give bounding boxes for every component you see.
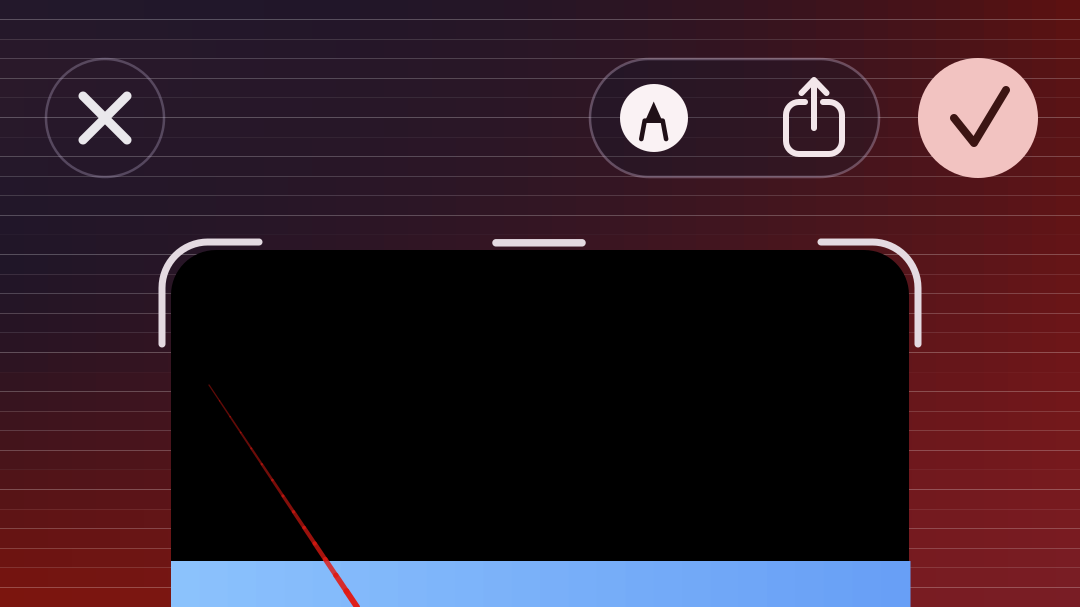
button[interactable]: Done (913, 53, 1043, 183)
button[interactable]: Close (40, 53, 170, 183)
button[interactable]: Share (770, 69, 858, 165)
button[interactable]: Markup (606, 68, 702, 168)
